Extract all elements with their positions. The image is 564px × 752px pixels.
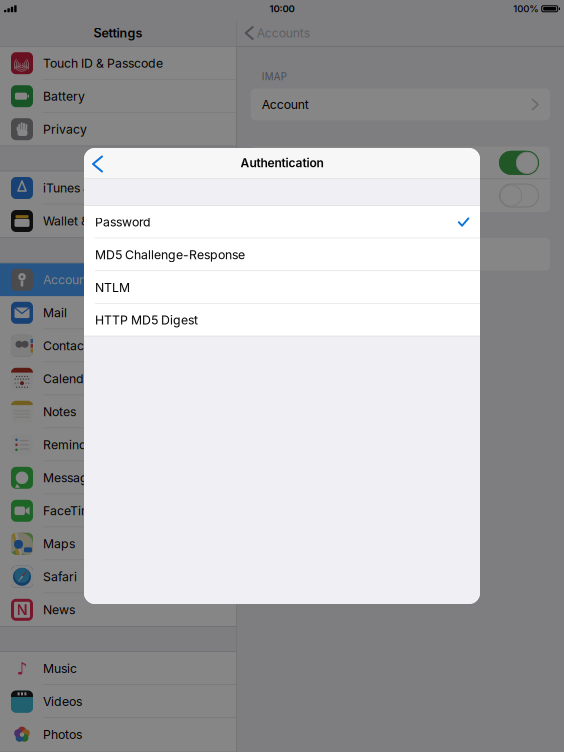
staticText: 100% — [513, 3, 539, 14]
staticText: Touch ID & Passcode — [43, 56, 163, 71]
button[interactable]: Videos — [0, 685, 236, 718]
staticText: Accounts & Passwords — [43, 272, 172, 287]
staticText: Maps — [43, 536, 75, 551]
staticText: Messages — [43, 470, 101, 485]
button[interactable]: Account — [251, 88, 550, 120]
staticText: Privacy — [43, 122, 87, 137]
staticText: Accounts — [257, 26, 310, 40]
staticText: Photos — [43, 727, 82, 742]
button[interactable]: Notes — [0, 395, 236, 428]
button[interactable]: MD5 Challenge-Response — [84, 238, 480, 271]
staticText: HTTP MD5 Digest — [95, 313, 198, 327]
button[interactable]: Contacts — [0, 329, 236, 362]
staticText: Calendar — [43, 371, 96, 386]
button[interactable]: FaceTime — [0, 494, 236, 527]
staticText: iTunes & App Store — [43, 181, 151, 195]
staticText: FaceTime — [43, 503, 99, 518]
staticText: Battery — [43, 89, 85, 104]
staticText: Notes — [43, 404, 76, 419]
button[interactable]: Mail — [0, 296, 236, 329]
button[interactable]: iTunes & App Store — [0, 171, 236, 204]
staticText: MD5 Challenge-Response — [95, 247, 245, 262]
button[interactable]: Touch ID & Passcode — [0, 47, 236, 80]
button[interactable]: ♪ — [0, 652, 236, 685]
staticText: Safari — [43, 569, 77, 584]
button[interactable]: Calendar — [0, 362, 236, 395]
button[interactable]: Accounts — [237, 20, 310, 46]
button[interactable]: Maps — [0, 527, 236, 560]
staticText: Contacts — [43, 338, 94, 353]
button[interactable]: Back — [84, 148, 112, 178]
staticText: N — [16, 601, 27, 619]
staticText: Mail — [43, 305, 67, 320]
staticText: Settings — [93, 25, 142, 41]
button[interactable]: N — [0, 593, 236, 626]
button[interactable]: Messages — [0, 461, 236, 494]
staticText: ♪ — [16, 658, 27, 679]
button[interactable]: Battery — [0, 80, 236, 113]
button[interactable]: Password — [84, 206, 480, 238]
staticText: Videos — [43, 694, 82, 709]
staticText: Music — [43, 661, 77, 676]
staticText: Reminders — [43, 437, 105, 452]
staticText: Wallet & Apple Pay — [43, 214, 151, 228]
button[interactable]: Reminders — [0, 428, 236, 461]
button[interactable]: Wallet & Apple Pay — [0, 204, 236, 237]
button[interactable]: Safari — [0, 560, 236, 593]
button[interactable]: Accounts & Passwords — [0, 263, 236, 296]
staticText: Authentication — [240, 156, 323, 170]
staticText: Account — [262, 97, 309, 112]
staticText: Password — [95, 215, 151, 229]
button[interactable]: NTLM — [84, 271, 480, 304]
staticText: IMAP — [262, 71, 287, 82]
staticText: 10:00 — [269, 3, 294, 14]
button[interactable]: Photos — [0, 718, 236, 751]
staticText: NTLM — [95, 280, 130, 295]
button[interactable]: HTTP MD5 Digest — [84, 304, 480, 336]
button[interactable]: Privacy — [0, 113, 236, 146]
staticText: News — [43, 602, 75, 617]
